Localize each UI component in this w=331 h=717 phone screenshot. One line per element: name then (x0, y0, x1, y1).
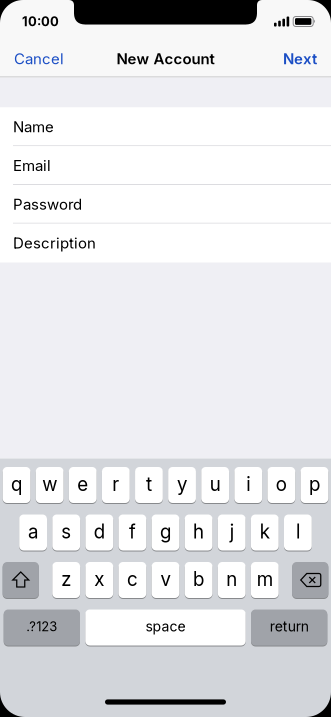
staticText: Email (13, 157, 51, 174)
button[interactable]: Email (0, 146, 331, 185)
staticText: space (145, 618, 185, 635)
button[interactable]: b (185, 561, 212, 598)
button[interactable]: Name (0, 107, 331, 146)
staticText: return (270, 618, 309, 635)
button[interactable]: g (152, 514, 179, 551)
staticText: h (193, 520, 204, 543)
staticText: c (127, 568, 138, 590)
button[interactable]: y (168, 466, 196, 503)
staticText: b (193, 568, 204, 590)
button[interactable]: Password (0, 185, 331, 224)
staticText: Name (13, 118, 54, 136)
button[interactable]: v (152, 561, 179, 598)
button[interactable]: j (218, 514, 246, 551)
staticText: n (226, 568, 237, 590)
staticText: l (296, 520, 300, 543)
staticText: e (77, 473, 88, 495)
button[interactable]: e (69, 466, 97, 503)
button[interactable]: return (251, 609, 327, 646)
button[interactable]: m (251, 561, 279, 598)
button[interactable]: w (36, 466, 63, 503)
button[interactable]: z (52, 561, 80, 598)
button[interactable]: Description (0, 224, 331, 263)
staticText: Cancel (14, 50, 64, 68)
staticText: i (246, 473, 250, 495)
button[interactable]: t (135, 466, 163, 503)
staticText: m (257, 568, 273, 590)
button[interactable]: c (118, 561, 146, 598)
staticText: Description (13, 234, 96, 252)
staticText: v (160, 568, 170, 590)
staticText: w (42, 473, 57, 495)
staticText: .?123 (26, 619, 57, 634)
button[interactable]: s (52, 514, 80, 551)
button[interactable]: f (118, 514, 146, 551)
staticText: y (177, 473, 187, 495)
button[interactable]: o (267, 466, 295, 503)
staticText: q (11, 473, 22, 495)
button[interactable]: q (3, 466, 30, 503)
staticText: u (210, 473, 221, 495)
button[interactable]: .?123 (4, 609, 80, 646)
button[interactable]: x (85, 561, 113, 598)
button[interactable]: i (234, 466, 262, 503)
button[interactable]: d (85, 514, 113, 551)
staticText: Next (283, 50, 317, 68)
staticText: x (94, 568, 104, 590)
button[interactable]: Next (283, 50, 317, 68)
staticText: g (160, 520, 171, 543)
button[interactable]: p (301, 466, 328, 503)
staticText: o (276, 473, 287, 495)
button[interactable]: space (85, 609, 246, 646)
staticText: f (129, 520, 136, 543)
button[interactable]: l (284, 514, 312, 551)
button[interactable]: a (19, 514, 47, 551)
staticText: s (61, 520, 71, 543)
staticText: Password (13, 195, 82, 213)
staticText: a (28, 520, 38, 543)
button[interactable]: Delete (292, 561, 328, 598)
button[interactable]: h (185, 514, 212, 551)
staticText: New Account (116, 50, 214, 68)
staticText: r (112, 473, 119, 495)
button[interactable]: n (218, 561, 246, 598)
staticText: p (309, 473, 320, 495)
staticText: k (260, 520, 270, 543)
staticText: z (61, 568, 71, 590)
button[interactable]: u (201, 466, 229, 503)
button[interactable]: r (102, 466, 130, 503)
button[interactable]: Cancel (14, 50, 64, 68)
staticText: t (146, 473, 152, 495)
button[interactable]: Shift (3, 561, 39, 598)
staticText: d (94, 520, 105, 543)
staticText: 10:00 (22, 14, 59, 29)
button[interactable]: k (251, 514, 279, 551)
staticText: j (230, 520, 234, 543)
